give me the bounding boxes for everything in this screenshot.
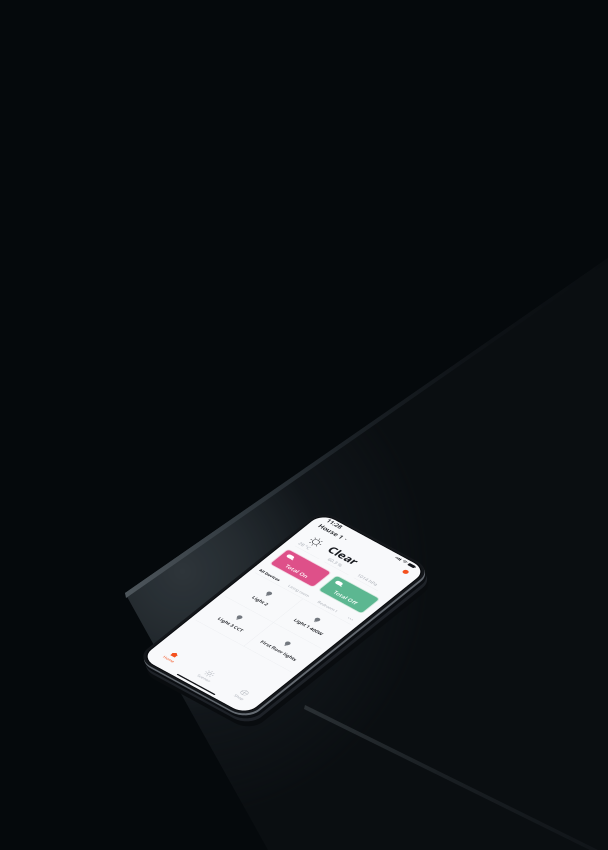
button[interactable]: Scenes — [125, 724, 250, 778]
staticText: First floor lights — [211, 527, 336, 548]
button[interactable]: Light 3 CCT — [16, 454, 187, 586]
button[interactable]: Shop — [250, 724, 375, 778]
button[interactable]: First floor lights — [188, 454, 359, 586]
